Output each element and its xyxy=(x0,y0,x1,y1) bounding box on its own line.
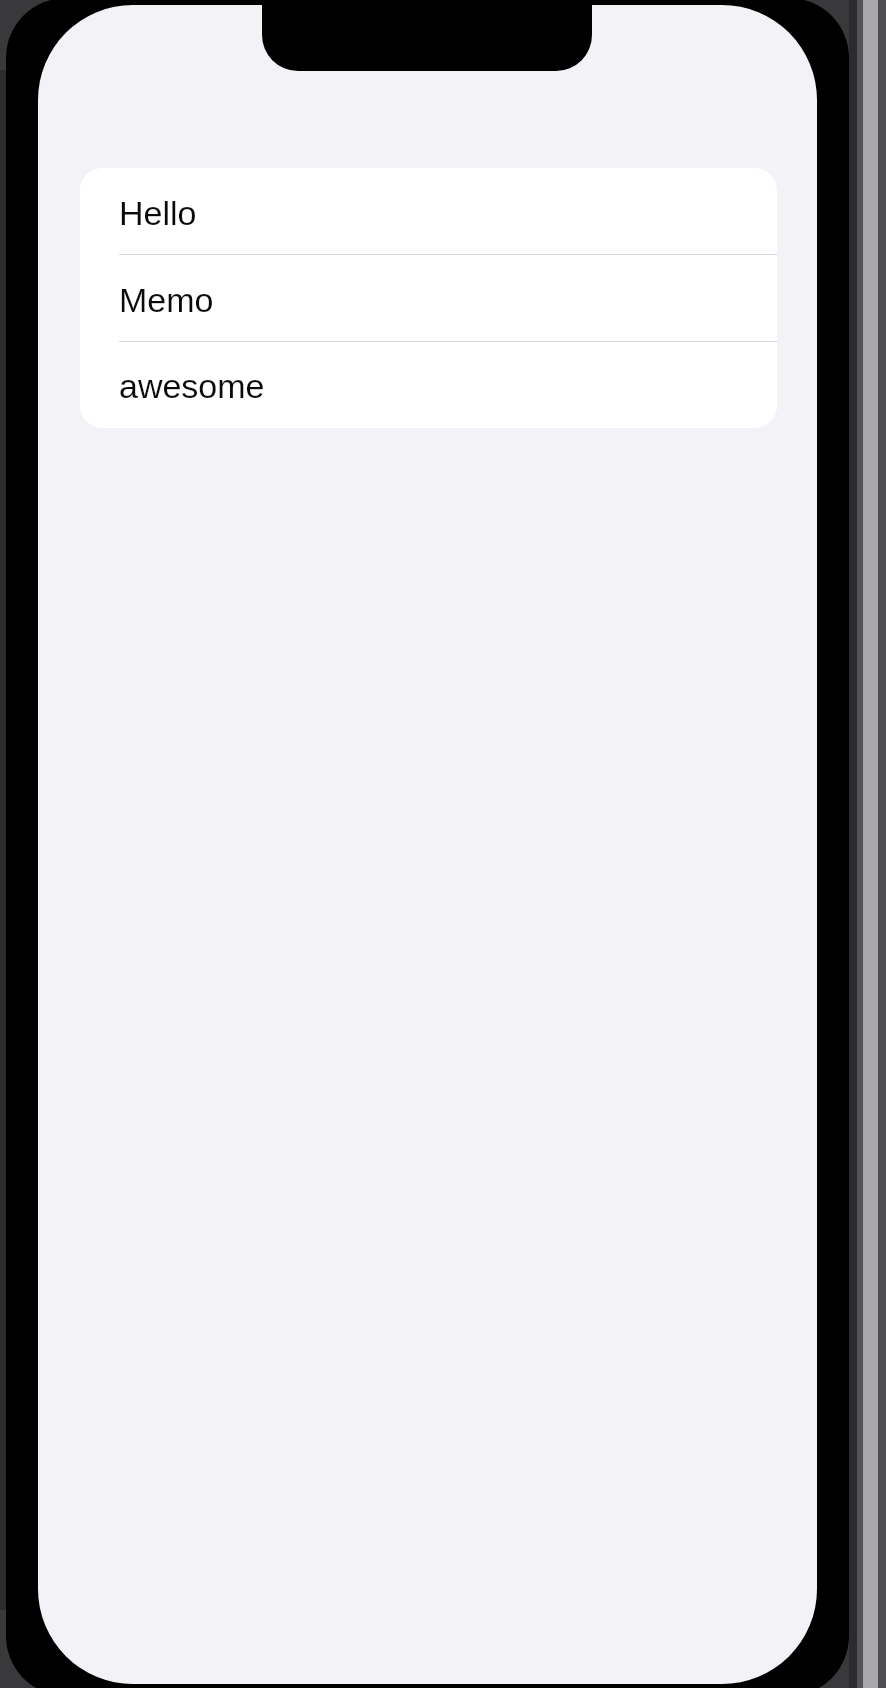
button[interactable]: Hello xyxy=(80,168,777,255)
staticText: Memo xyxy=(119,281,214,319)
staticText: awesome xyxy=(119,367,265,405)
staticText: Hello xyxy=(119,194,197,232)
button[interactable]: awesome xyxy=(80,342,777,428)
button[interactable]: Memo xyxy=(80,255,777,342)
